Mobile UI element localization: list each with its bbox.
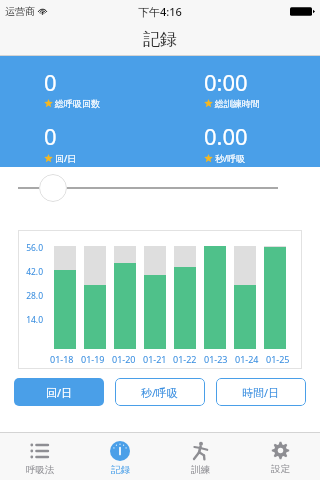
staticText: 01-25 [266,353,290,365]
button[interactable]: 設定 [240,433,320,480]
button[interactable]: Adjust range [39,174,67,202]
button[interactable]: 時間/日 [216,378,306,406]
staticText: 56.0 [18,242,43,254]
staticText: 総呼吸回数 [55,98,100,109]
button[interactable]: 回/日 [14,378,104,406]
staticText: 呼吸法 [26,464,55,476]
staticText: 0:00 [204,67,248,97]
staticText: 時間/日 [242,385,280,400]
staticText: 14.0 [18,314,43,326]
button[interactable]: 秒/呼吸 [115,378,205,406]
button[interactable]: 訓練 [160,433,240,480]
staticText: 42.0 [18,266,43,278]
staticText: 下午4:16 [138,4,182,19]
staticText: 記録 [111,464,130,476]
staticText: 0.00 [204,121,248,151]
staticText: 秒/呼吸 [141,385,179,400]
staticText: 総訓練時間 [215,98,260,109]
staticText: 01-20 [112,353,136,365]
staticText: 01-18 [50,353,74,365]
staticText: 运营商 [5,5,35,18]
staticText: 設定 [271,463,290,475]
staticText: 01-23 [204,353,228,365]
button[interactable]: 呼吸法 [0,433,80,480]
staticText: 28.0 [18,290,43,302]
staticText: 回/日 [46,385,73,400]
staticText: 0 [44,67,57,97]
staticText: 0 [44,121,57,151]
staticText: 回/日 [55,152,77,164]
button[interactable]: 記録 [80,433,160,480]
staticText: 01-19 [81,353,105,365]
staticText: 訓練 [191,464,210,476]
staticText: 01-22 [173,353,197,365]
staticText: 記録 [143,29,177,50]
staticText: 01-24 [235,353,259,365]
staticText: 01-21 [143,353,167,365]
staticText: 秒/呼吸 [215,152,246,164]
